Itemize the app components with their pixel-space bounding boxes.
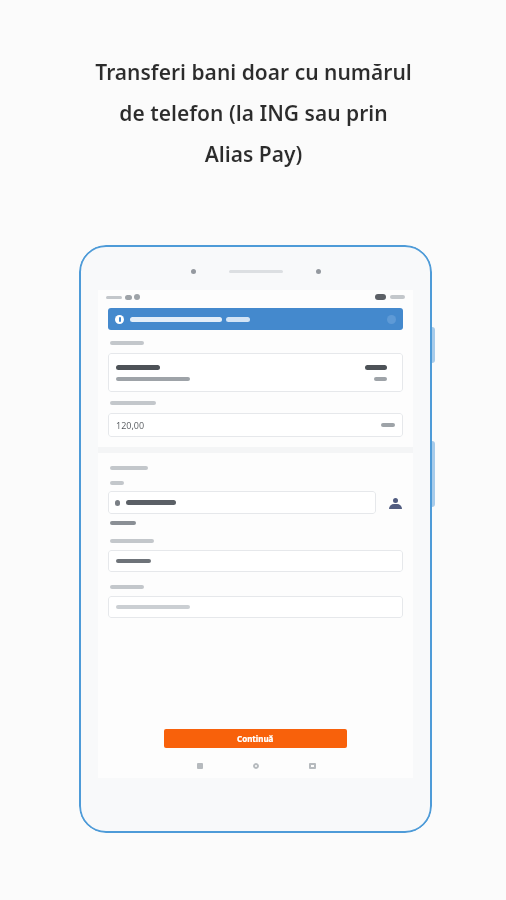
- staticText: 120,00: [116, 419, 145, 431]
- button[interactable]: Home: [248, 758, 264, 774]
- button[interactable]: [108, 491, 376, 514]
- button[interactable]: Contacts: [385, 493, 405, 513]
- staticText: Transferi bani doar cu numărul de telefo…: [95, 58, 412, 168]
- button[interactable]: [108, 596, 403, 618]
- button[interactable]: 120,00: [108, 413, 403, 437]
- button[interactable]: Close: [387, 315, 396, 324]
- button[interactable]: [108, 550, 403, 572]
- button[interactable]: Recent apps: [304, 758, 320, 774]
- button[interactable]: [108, 353, 403, 392]
- button[interactable]: Close: [108, 308, 403, 330]
- button[interactable]: Back: [192, 758, 208, 774]
- button[interactable]: Continuă: [164, 729, 347, 748]
- staticText: Continuă: [237, 733, 274, 744]
